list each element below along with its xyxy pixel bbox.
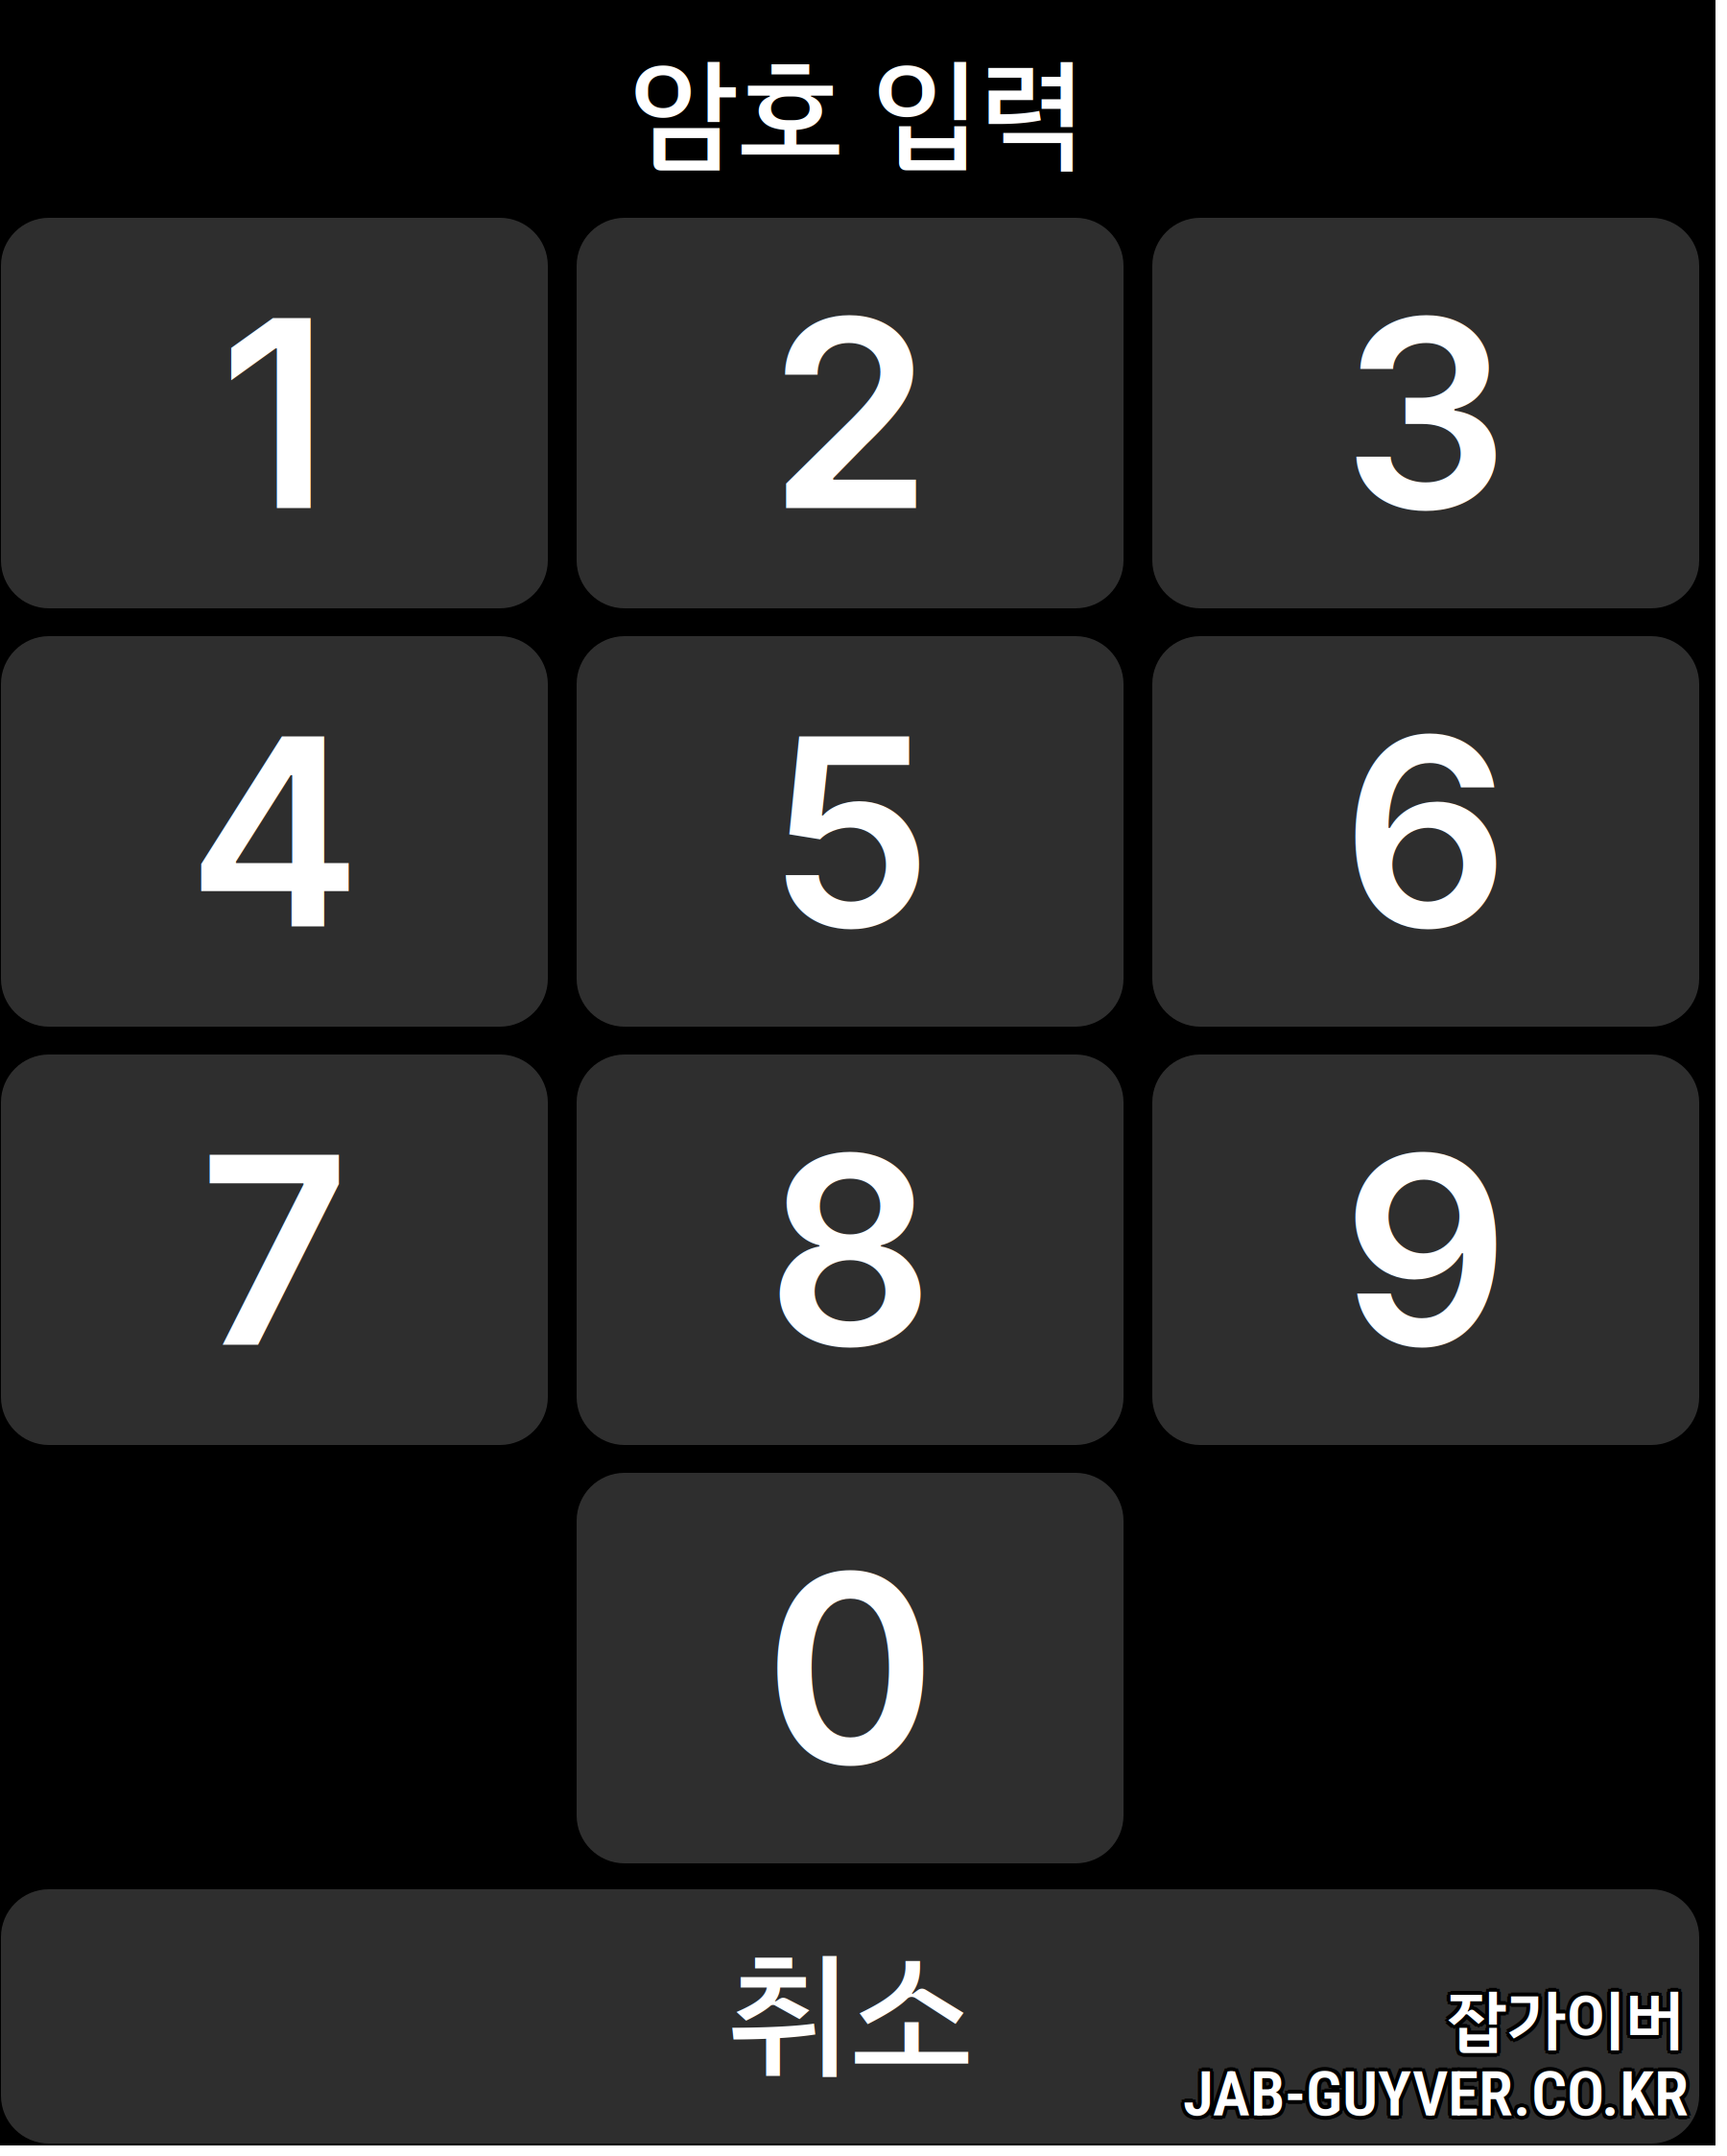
staticText: 잡가이버 [1450, 1968, 1688, 2068]
staticText: 잡가이버 [1447, 1967, 1685, 2067]
staticText: JAB-GUYVER.CO.KR [1183, 2057, 1689, 2131]
button[interactable]: 2 [577, 218, 1124, 608]
staticText: 암호 입력 [631, 25, 1085, 203]
staticText: JAB-GUYVER.CO.KR [1180, 2054, 1686, 2128]
staticText: 9 [1342, 1092, 1509, 1408]
button[interactable]: 취소 [1, 1889, 1699, 2144]
staticText: 잡가이버 [1447, 1971, 1685, 2071]
staticText: 잡가이버 [1450, 1974, 1688, 2074]
staticText: 취소 [727, 1913, 973, 2120]
button[interactable]: 0 [577, 1473, 1124, 1863]
staticText: JAB-GUYVER.CO.KR [1180, 2060, 1686, 2134]
staticText: JAB-GUYVER.CO.KR [1186, 2060, 1692, 2134]
staticText: 4 [188, 673, 361, 989]
staticText: 7 [199, 1092, 350, 1408]
staticText: 8 [767, 1092, 934, 1408]
button[interactable]: 4 [1, 636, 548, 1027]
staticText: 잡가이버 [1444, 1974, 1682, 2074]
staticText: 잡가이버 [1443, 1971, 1681, 2071]
button[interactable]: 7 [1, 1054, 548, 1445]
staticText: JAB-GUYVER.CO.KR [1183, 2054, 1689, 2127]
staticText: JAB-GUYVER.CO.KR [1187, 2057, 1692, 2131]
staticText: JAB-GUYVER.CO.KR [1186, 2054, 1692, 2128]
staticText: 3 [1343, 255, 1509, 571]
staticText: 6 [1342, 673, 1509, 989]
staticText: JAB-GUYVER.CO.KR [1179, 2057, 1685, 2131]
button[interactable]: 8 [577, 1054, 1124, 1445]
button[interactable]: 5 [577, 636, 1124, 1027]
staticText: 0 [764, 1510, 936, 1826]
staticText: 5 [768, 673, 932, 989]
staticText: 1 [219, 255, 330, 571]
button[interactable]: 1 [1, 218, 548, 608]
button[interactable]: 3 [1152, 218, 1699, 608]
staticText: 잡가이버 [1451, 1971, 1689, 2071]
staticText: 잡가이버 [1447, 1975, 1685, 2075]
staticText: 잡가이버 [1444, 1968, 1682, 2068]
staticText: 2 [769, 255, 931, 571]
button[interactable]: 9 [1152, 1054, 1699, 1445]
button[interactable]: 6 [1152, 636, 1699, 1027]
staticText: JAB-GUYVER.CO.KR [1183, 2061, 1689, 2135]
